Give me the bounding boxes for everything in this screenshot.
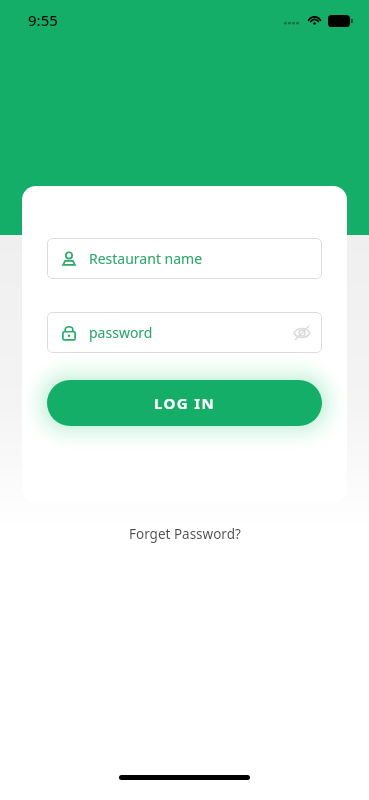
button[interactable]: Show password <box>285 316 319 350</box>
staticText: LOG IN <box>154 393 216 413</box>
staticText: password <box>89 323 153 342</box>
button[interactable]: password <box>47 312 322 353</box>
button[interactable]: Restaurant name <box>47 238 322 279</box>
staticText: Restaurant name <box>89 249 203 268</box>
staticText: 9:55 <box>28 10 58 30</box>
staticText: Forget Password? <box>129 525 241 543</box>
button[interactable]: LOG IN <box>47 380 322 426</box>
button[interactable]: Forget Password? <box>117 521 253 547</box>
